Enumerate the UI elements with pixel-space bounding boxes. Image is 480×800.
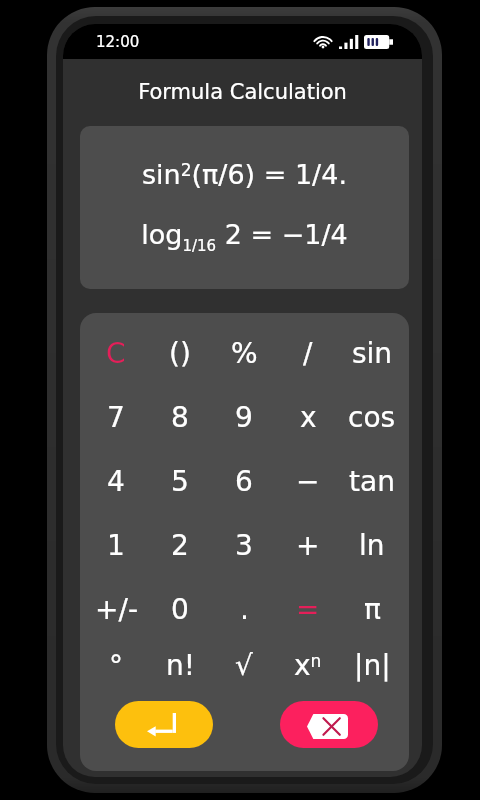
button[interactable]: ln: [340, 513, 404, 577]
button[interactable]: x: [276, 385, 340, 449]
staticText: log1/16 2 = −1/4: [80, 219, 409, 255]
button[interactable]: /: [276, 321, 340, 385]
staticText: °: [109, 649, 123, 682]
button[interactable]: sin: [340, 321, 404, 385]
button[interactable]: tan: [340, 449, 404, 513]
staticText: tan: [349, 465, 395, 498]
staticText: =: [296, 593, 320, 626]
staticText: /: [303, 337, 313, 370]
staticText: −: [296, 465, 320, 498]
button[interactable]: C: [84, 321, 148, 385]
staticText: 6: [235, 465, 253, 498]
staticText: 7: [107, 401, 125, 434]
button[interactable]: +/-: [84, 577, 148, 641]
staticText: ln: [359, 529, 385, 562]
staticText: x: [300, 401, 317, 434]
staticText: Formula Calculation: [63, 80, 422, 104]
staticText: π: [364, 593, 381, 626]
button[interactable]: 3: [212, 513, 276, 577]
staticText: n!: [166, 649, 195, 682]
button[interactable]: %: [212, 321, 276, 385]
button[interactable]: .: [212, 577, 276, 641]
staticText: sin2(π/6) = 1/4.: [80, 159, 409, 190]
staticText: 12:00: [96, 33, 140, 50]
staticText: +/-: [95, 593, 138, 626]
button[interactable]: 6: [212, 449, 276, 513]
staticText: +: [296, 529, 320, 562]
staticText: |n|: [354, 649, 391, 682]
button[interactable]: |n|: [340, 633, 404, 697]
staticText: 1: [107, 529, 125, 562]
button[interactable]: n!: [148, 633, 212, 697]
button[interactable]: +: [276, 513, 340, 577]
staticText: sin: [352, 337, 393, 370]
staticText: .: [240, 593, 249, 626]
button[interactable]: cos: [340, 385, 404, 449]
button[interactable]: 0: [148, 577, 212, 641]
button[interactable]: 1: [84, 513, 148, 577]
button[interactable]: 2: [148, 513, 212, 577]
button[interactable]: 8: [148, 385, 212, 449]
staticText: (): [169, 337, 191, 370]
button[interactable]: Enter: [115, 701, 213, 748]
staticText: 5: [171, 465, 189, 498]
button[interactable]: √: [212, 633, 276, 697]
button[interactable]: (): [148, 321, 212, 385]
button[interactable]: 9: [212, 385, 276, 449]
button[interactable]: =: [276, 577, 340, 641]
button[interactable]: −: [276, 449, 340, 513]
staticText: 4: [107, 465, 125, 498]
button[interactable]: 7: [84, 385, 148, 449]
staticText: %: [231, 337, 258, 370]
button[interactable]: °: [84, 633, 148, 697]
button[interactable]: 4: [84, 449, 148, 513]
staticText: √: [235, 649, 253, 682]
button[interactable]: π: [340, 577, 404, 641]
button[interactable]: 5: [148, 449, 212, 513]
button[interactable]: Backspace: [280, 701, 378, 748]
staticText: xn: [294, 649, 322, 682]
staticText: C: [106, 337, 126, 370]
button[interactable]: x^n: [276, 633, 340, 697]
staticText: cos: [348, 401, 396, 434]
staticText: 3: [235, 529, 253, 562]
staticText: 0: [171, 593, 189, 626]
staticText: 8: [171, 401, 189, 434]
staticText: 2: [171, 529, 189, 562]
staticText: 9: [235, 401, 253, 434]
